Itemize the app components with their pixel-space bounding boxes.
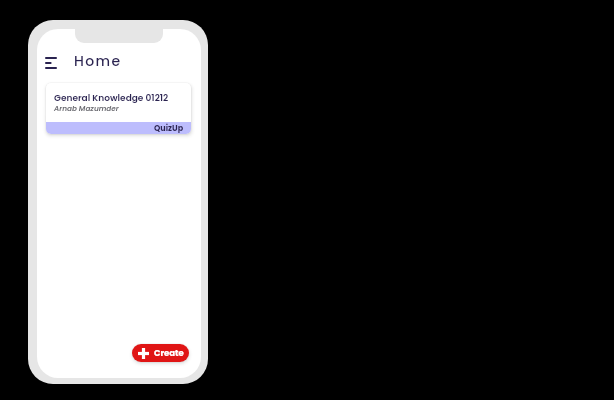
staticText: General Knowledge 01212 <box>54 92 169 105</box>
staticText: Arnab Mazumder <box>54 103 119 113</box>
button[interactable]: General Knowledge 01212 <box>46 83 191 134</box>
staticText: QuizUp <box>154 123 184 134</box>
staticText: Create <box>154 347 184 359</box>
button[interactable]: Menu <box>43 55 58 70</box>
button[interactable]: Create <box>132 344 189 362</box>
staticText: Home <box>74 51 122 71</box>
